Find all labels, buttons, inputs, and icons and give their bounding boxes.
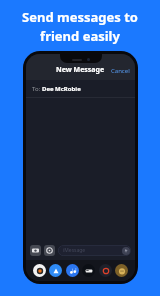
staticText: friend easily [40, 27, 120, 45]
button[interactable]: Music [66, 264, 79, 277]
button[interactable]: Apps [44, 245, 55, 256]
staticText: Send messages to [22, 8, 138, 26]
button[interactable]: Photos [33, 264, 46, 277]
staticText: New Message [56, 65, 105, 75]
button[interactable]: Cancel [111, 67, 135, 80]
button[interactable]: Activity [99, 264, 112, 277]
button[interactable]: Send [122, 247, 130, 255]
staticText: iMessage [63, 247, 86, 254]
staticText: Cancel [111, 67, 130, 75]
button[interactable]: Wallet [82, 264, 95, 277]
button[interactable]: Camera [30, 245, 41, 256]
button[interactable]: iMessage [58, 245, 131, 256]
staticText: Dee McRobie [42, 85, 81, 93]
button[interactable]: App Store [49, 264, 62, 277]
button[interactable]: To: [26, 80, 135, 97]
button[interactable]: Memoji [115, 264, 128, 277]
staticText: To: [32, 85, 42, 93]
